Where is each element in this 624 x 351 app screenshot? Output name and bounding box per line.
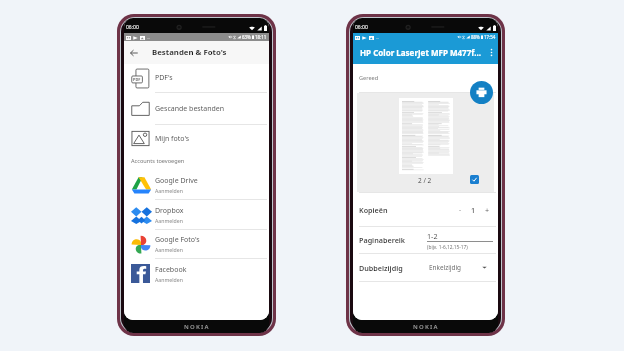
staticText: Bestanden & Foto's [152, 47, 227, 58]
staticText: 88% [471, 34, 480, 40]
staticText: Google Drive [155, 176, 198, 186]
staticText: 63% [242, 34, 251, 40]
staticText: - [459, 205, 462, 214]
button[interactable]: More options [485, 41, 498, 64]
staticText: Google Foto's [155, 235, 200, 245]
button[interactable]: Kopieën [353, 193, 498, 226]
staticText: Accounts toevoegen [131, 157, 185, 165]
staticText: Dropbox [155, 206, 184, 216]
staticText: Enkelzijdig [429, 263, 461, 272]
staticText: + [485, 205, 490, 215]
staticText: NOKIA [184, 323, 210, 331]
staticText: Dubbelzijdig [359, 263, 403, 273]
button[interactable]: PDF [124, 64, 269, 92]
button[interactable]: Back [124, 41, 144, 64]
staticText: PDF's [155, 73, 173, 83]
staticText: Mijn foto's [155, 134, 190, 144]
button[interactable]: Mijn foto's [124, 125, 269, 152]
staticText: 06:00 [126, 24, 139, 31]
button[interactable]: Print [470, 81, 493, 104]
staticText: Aanmelden [155, 217, 183, 224]
button[interactable]: Google Foto's [124, 230, 269, 258]
staticText: 06:00 [355, 24, 368, 31]
staticText: Gereed [359, 74, 379, 82]
staticText: Kopieën [359, 205, 388, 215]
button[interactable]: Paginabereik [353, 227, 498, 253]
button[interactable]: Page selected [470, 175, 479, 184]
button[interactable]: Dubbelzijdig [353, 254, 498, 281]
staticText: PDF [133, 77, 141, 82]
staticText: 1-2 [427, 231, 438, 241]
button[interactable]: Back [124, 41, 269, 64]
staticText: Aanmelden [155, 187, 183, 194]
staticText: HP Color LaserJet MFP M477f... [360, 47, 481, 58]
staticText: Paginabereik [359, 235, 406, 245]
staticText: 2 / 2 [418, 176, 432, 185]
staticText: Gescande bestanden [155, 104, 225, 114]
button[interactable]: Dropbox [124, 200, 269, 229]
staticText: (bijv. 1-6,12,15-17) [427, 244, 468, 251]
button[interactable]: Google Drive [124, 170, 269, 199]
staticText: Aanmelden [155, 276, 183, 283]
button[interactable]: Facebook [124, 259, 269, 288]
button[interactable]: Gescande bestanden [124, 93, 269, 124]
staticText: ... [147, 35, 151, 40]
staticText: 1 [471, 205, 476, 215]
staticText: Facebook [155, 265, 187, 275]
button[interactable]: HP Color LaserJet MFP M477f... [353, 41, 498, 64]
staticText: 17:54 [484, 34, 496, 40]
staticText: Aanmelden [155, 246, 183, 253]
staticText: 18:11 [255, 34, 267, 40]
staticText: NOKIA [413, 323, 439, 331]
staticText: ... [376, 35, 380, 40]
